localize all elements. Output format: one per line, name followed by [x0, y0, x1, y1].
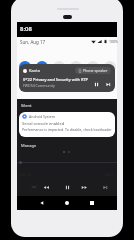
button[interactable]: Do not disturb: [53, 61, 65, 73]
button[interactable]: Flashlight: [70, 61, 82, 73]
staticText: Kanto: [29, 68, 41, 73]
staticText: 100%: [109, 39, 118, 44]
button[interactable]: Kanto: [19, 64, 115, 92]
button[interactable]: Home: [65, 201, 69, 205]
staticText: Silent: [21, 103, 32, 108]
button[interactable]: Pause: [93, 81, 100, 88]
button[interactable]: Fast forward: [81, 184, 88, 191]
button[interactable]: Wi-Fi: [19, 61, 31, 73]
button[interactable]: Auto-rotate: [87, 61, 99, 73]
button[interactable]: Phone speaker: [78, 68, 108, 73]
staticText: 0*22 Privacy and Security with RTP: [23, 77, 89, 82]
button[interactable]: Pause: [64, 184, 71, 191]
button[interactable]: Android System: [19, 112, 115, 137]
staticText: FWD54 Community: [23, 83, 55, 88]
staticText: Android System: [29, 114, 55, 119]
button[interactable]: Next: [105, 81, 112, 88]
staticText: Performance is impacted. To disable, che…: [22, 127, 112, 132]
button[interactable]: Rewind: [43, 184, 50, 191]
button[interactable]: Manage: [21, 143, 37, 148]
staticText: Sun, Aug 17: [20, 39, 46, 45]
button[interactable]: Battery saver: [104, 61, 116, 73]
button[interactable]: Bluetooth: [36, 61, 48, 73]
button[interactable]: Next track: [102, 184, 109, 191]
staticText: Phone speaker: [83, 68, 108, 73]
staticText: Serial console enabled: [22, 121, 65, 126]
staticText: 8:08: [20, 25, 32, 33]
button[interactable]: Back: [39, 200, 45, 206]
button[interactable]: Shuffle: [31, 184, 37, 190]
